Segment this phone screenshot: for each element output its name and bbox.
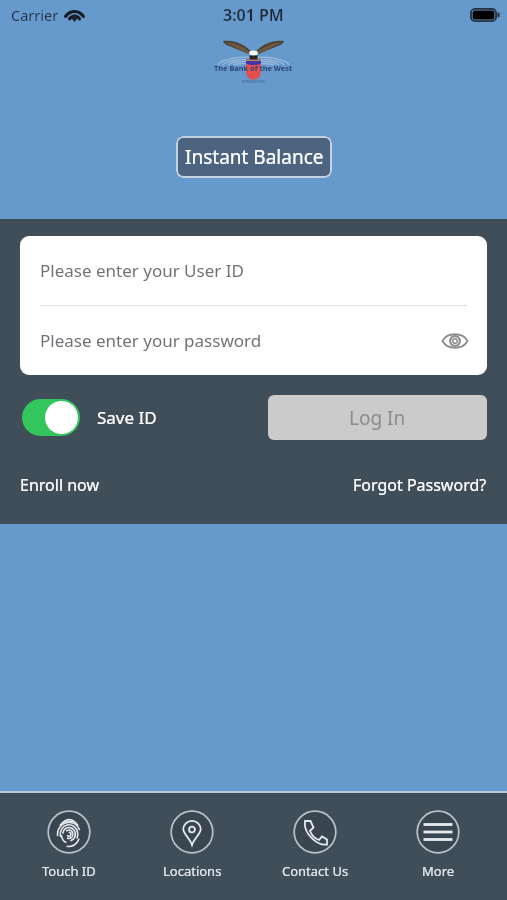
staticText: Please enter your password bbox=[40, 329, 262, 352]
button[interactable]: Please enter your password bbox=[20, 306, 487, 375]
staticText: Contact Us bbox=[282, 862, 349, 880]
button[interactable]: Log In bbox=[268, 395, 487, 440]
button[interactable]: Show password bbox=[439, 325, 471, 357]
staticText: Save ID bbox=[97, 406, 157, 429]
button[interactable]: Enroll now bbox=[20, 474, 99, 496]
button[interactable]: Please enter your User ID bbox=[20, 236, 487, 305]
button[interactable]: Save ID bbox=[22, 399, 157, 436]
staticText: Forgot Password? bbox=[353, 474, 487, 496]
button[interactable]: Touch ID bbox=[15, 810, 123, 880]
staticText: More bbox=[422, 862, 455, 880]
button[interactable]: More bbox=[384, 810, 492, 880]
button[interactable]: Locations bbox=[138, 810, 246, 880]
staticText: Log In bbox=[349, 405, 406, 431]
button[interactable]: Forgot Password? bbox=[353, 474, 487, 496]
button[interactable]: Instant Balance bbox=[176, 136, 332, 178]
staticText: Please enter your User ID bbox=[40, 259, 244, 282]
staticText: Touch ID bbox=[42, 862, 96, 880]
staticText: Locations bbox=[163, 862, 222, 880]
staticText: 3:01 PM bbox=[223, 4, 284, 26]
button[interactable]: Contact Us bbox=[261, 810, 369, 880]
staticText: Carrier bbox=[11, 5, 59, 25]
staticText: MEMBER FDIC bbox=[242, 79, 266, 84]
staticText: The Bank of the West bbox=[214, 63, 293, 73]
staticText: Enroll now bbox=[20, 474, 99, 496]
staticText: Instant Balance bbox=[185, 144, 324, 170]
